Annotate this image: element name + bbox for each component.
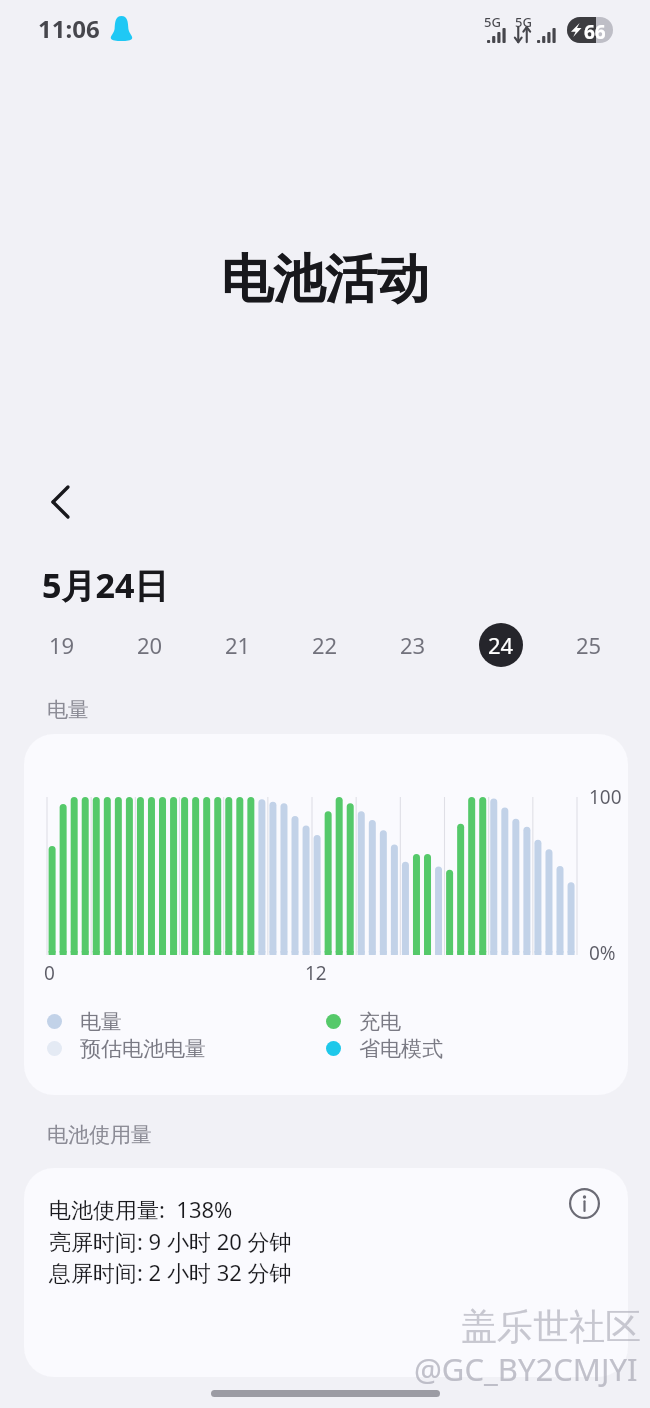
staticText: 电池使用量: 138% — [49, 1194, 233, 1224]
staticText: 电池活动 — [221, 247, 429, 313]
staticText: 盖乐世社区 — [461, 1304, 641, 1349]
button[interactable]: 20 — [112, 617, 188, 673]
staticText: 电池活动 — [221, 247, 429, 313]
button[interactable]: Back — [40, 478, 88, 526]
button[interactable]: 24 — [463, 617, 539, 673]
staticText: 21 — [225, 630, 251, 660]
staticText: 息屏时间: 2 小时 32 分钟 — [49, 1257, 292, 1287]
staticText: 电池使用量 — [47, 1122, 152, 1148]
staticText: 22 — [312, 630, 338, 660]
staticText: 5月24日 — [42, 562, 169, 608]
staticText: 11:06 — [38, 12, 100, 45]
staticText: 省电模式 — [359, 1036, 443, 1060]
staticText: 电量 — [80, 1009, 122, 1033]
staticText: 5G — [515, 13, 532, 31]
button[interactable]: 21 — [200, 617, 276, 673]
staticText: @GC_BY2CMJYI — [414, 1348, 638, 1390]
staticText: 19 — [49, 630, 75, 660]
button[interactable]: 25 — [551, 617, 627, 673]
staticText: 23 — [400, 630, 426, 660]
staticText: 电量 — [47, 697, 89, 723]
button[interactable]: 19 — [24, 617, 100, 673]
button[interactable]: 23 — [375, 617, 451, 673]
staticText: 0% — [589, 940, 616, 966]
button[interactable]: Info — [562, 1181, 606, 1225]
button[interactable]: 22 — [287, 617, 363, 673]
staticText: 12 — [305, 960, 327, 986]
staticText: 25 — [576, 630, 602, 660]
staticText: 20 — [137, 630, 163, 660]
staticText: 亮屏时间: 9 小时 20 分钟 — [49, 1226, 292, 1256]
staticText: 充电 — [359, 1009, 401, 1033]
staticText: 5月24日 — [42, 562, 169, 608]
staticText: 24 — [488, 630, 514, 660]
staticText: 0 — [44, 960, 55, 986]
staticText: 100 — [589, 784, 622, 810]
staticText: 5G — [484, 13, 501, 31]
staticText: 预估电池电量 — [80, 1036, 206, 1060]
staticText: 66 — [584, 19, 606, 43]
